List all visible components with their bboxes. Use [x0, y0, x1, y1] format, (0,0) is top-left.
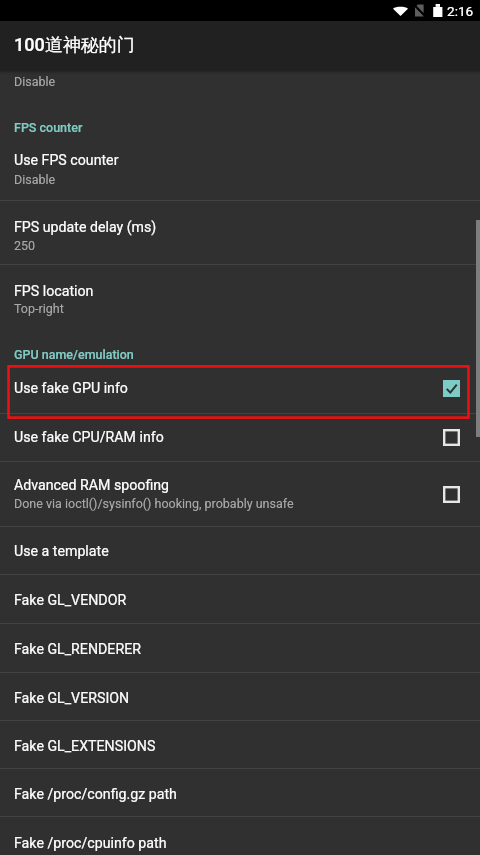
staticText: 250 — [14, 238, 36, 253]
button[interactable]: Use a template — [0, 528, 480, 575]
staticText: Fake GL_VERSION — [14, 690, 130, 707]
staticText: Fake GL_EXTENSIONS — [14, 738, 156, 755]
staticText: 2:16 — [447, 3, 474, 19]
staticText: GPU name/emulation — [14, 347, 134, 362]
other: No SIM card — [414, 4, 426, 17]
staticText: Done via ioctl()/sysinfo() hooking, prob… — [14, 496, 294, 511]
button[interactable]: FPS update delay (ms) — [0, 204, 480, 267]
button[interactable]: Fake /proc/config.gz path — [0, 771, 480, 818]
button[interactable]: Fake GL_EXTENSIONS — [0, 723, 480, 770]
staticText: Top-right — [14, 301, 64, 316]
staticText: Use a template — [14, 543, 109, 560]
staticText: FPS counter — [14, 120, 83, 135]
staticText: Disable — [14, 74, 56, 89]
button[interactable]: Fake GL_VERSION — [0, 675, 480, 722]
staticText: Fake GL_RENDERER — [14, 641, 141, 658]
staticText: 100道神秘的门 — [14, 34, 135, 57]
staticText: Disable — [14, 172, 56, 187]
button[interactable]: Use fake GPU info — [0, 365, 480, 412]
button[interactable]: Advanced RAM spoofing — [0, 462, 480, 526]
button[interactable]: Disable — [0, 70, 480, 92]
staticText: Advanced RAM spoofing — [14, 477, 170, 494]
button[interactable]: Fake GL_RENDERER — [0, 625, 480, 673]
staticText: FPS update delay (ms) — [14, 219, 157, 236]
staticText: Fake /proc/config.gz path — [14, 786, 177, 803]
button[interactable]: Use FPS counter — [0, 137, 480, 200]
other: Battery — [433, 4, 443, 17]
staticText: Use fake CPU/RAM info — [14, 429, 164, 446]
button[interactable]: Fake /proc/cpuinfo path — [0, 819, 480, 855]
staticText: Fake GL_VENDOR — [14, 592, 127, 609]
staticText: FPS location — [14, 283, 94, 300]
button[interactable]: FPS location — [0, 265, 480, 328]
staticText: Fake /proc/cpuinfo path — [14, 835, 167, 852]
staticText: Use fake GPU info — [14, 380, 128, 397]
button[interactable]: Use fake CPU/RAM info — [0, 414, 480, 461]
button[interactable]: Fake GL_VENDOR — [0, 576, 480, 624]
other: Wi-Fi signal — [393, 5, 408, 16]
staticText: Use FPS counter — [14, 152, 119, 169]
